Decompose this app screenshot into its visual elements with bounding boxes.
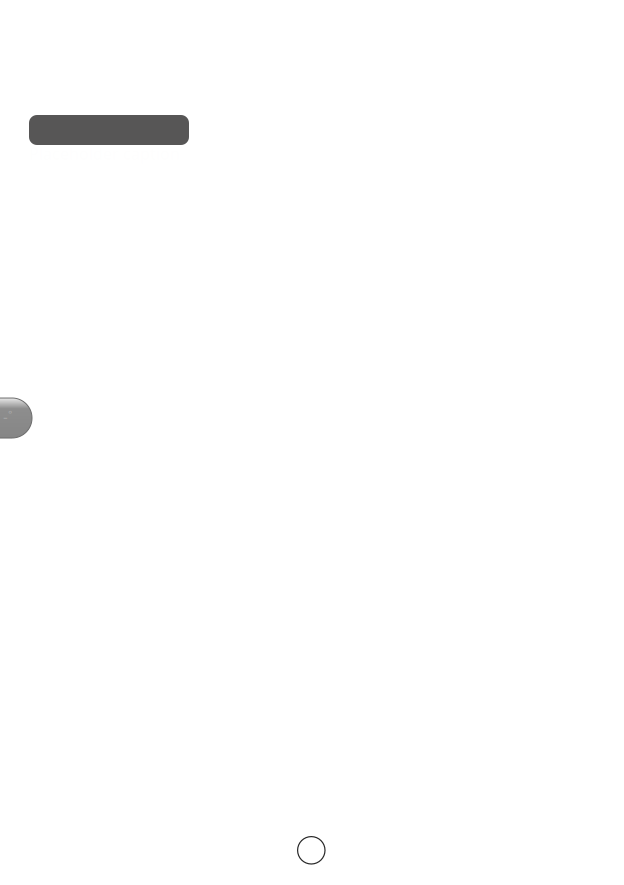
button[interactable]: Done — [0, 398, 32, 438]
staticText: -˚ — [3, 407, 12, 427]
button[interactable]: Record — [298, 837, 325, 864]
staticText: Placeholder caption — [29, 143, 180, 164]
